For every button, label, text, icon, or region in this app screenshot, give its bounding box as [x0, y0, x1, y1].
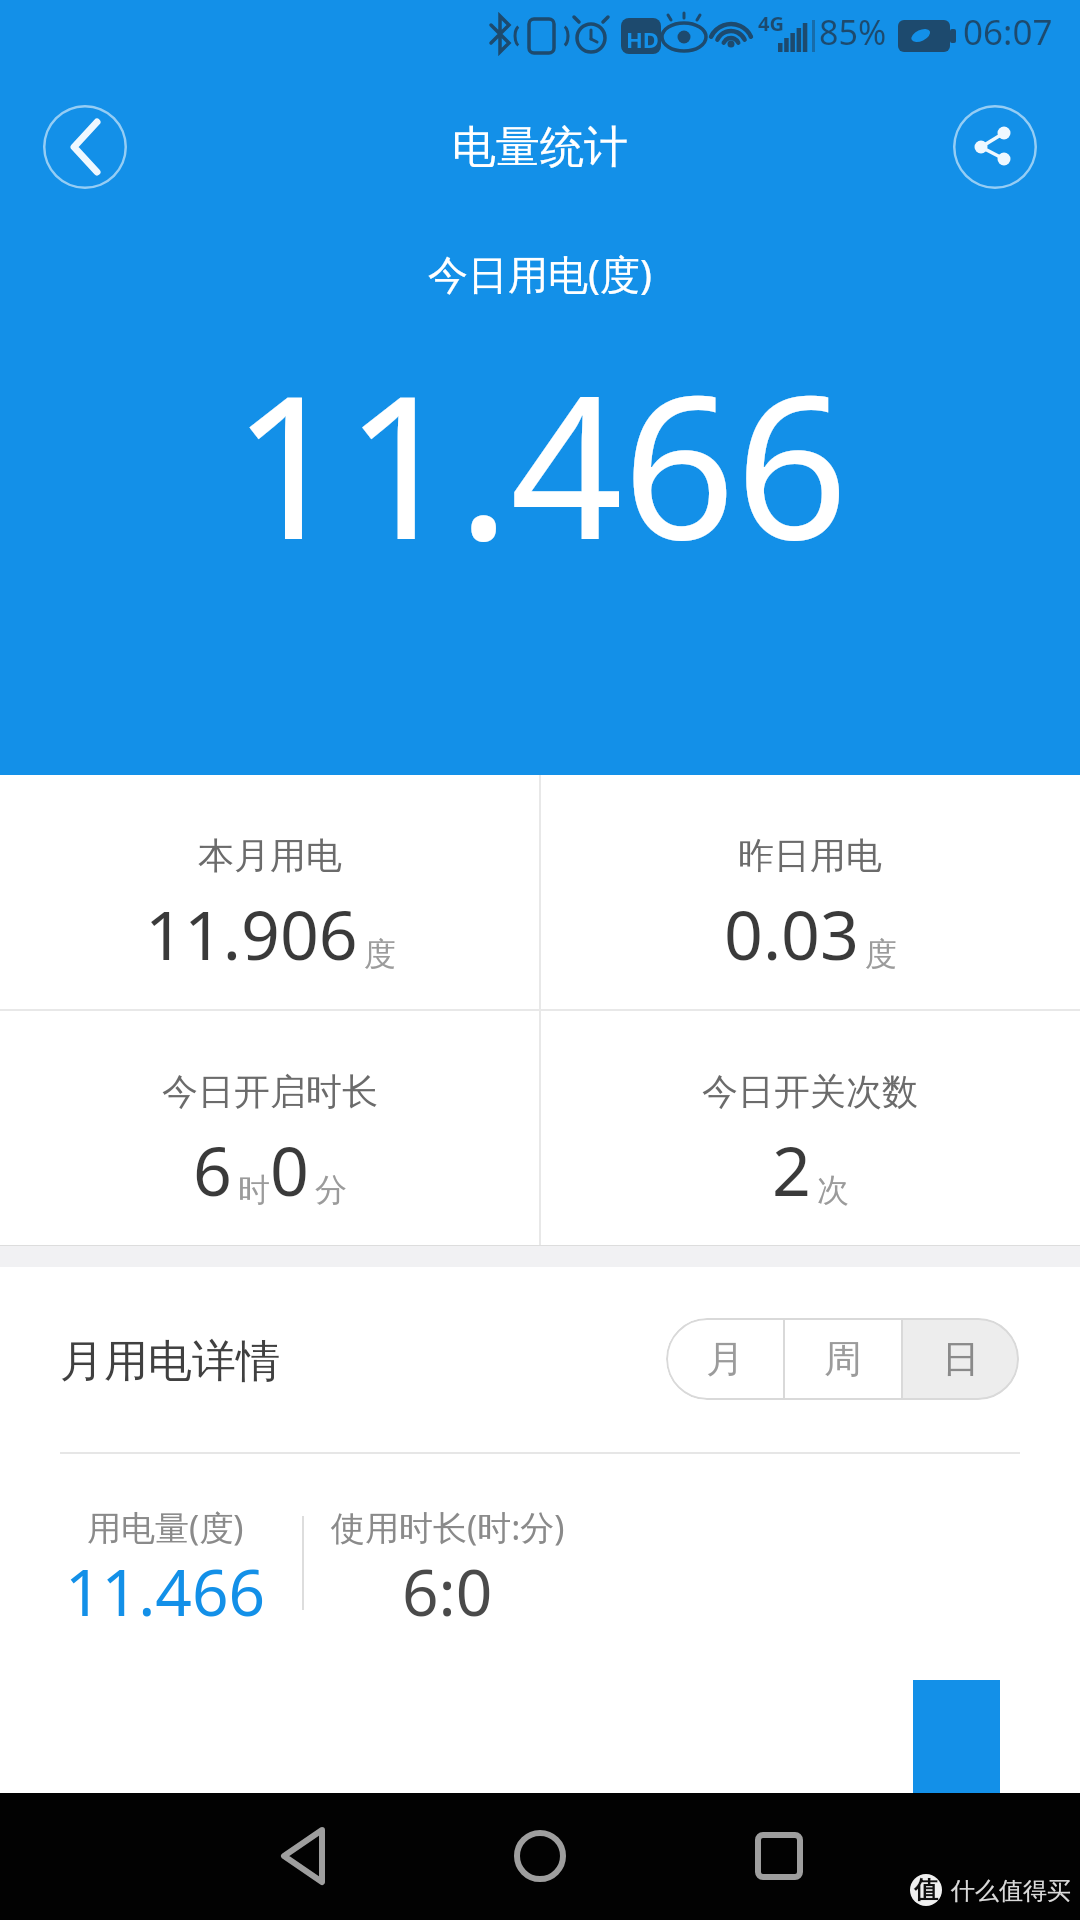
staticText: HD: [626, 24, 659, 54]
staticText: 度: [865, 934, 897, 974]
staticText: 用电量(度): [87, 1504, 244, 1550]
button[interactable]: 今日开关次数: [540, 1011, 1080, 1246]
button[interactable]: 月: [666, 1318, 783, 1400]
staticText: 时: [238, 1170, 270, 1210]
staticText: 06:07: [963, 8, 1053, 56]
staticText: 次: [817, 1170, 849, 1210]
staticText: 今日开关次数: [702, 1069, 918, 1114]
button[interactable]: 日: [903, 1318, 1019, 1400]
button[interactable]: [953, 105, 1037, 189]
staticText: 分: [315, 1170, 347, 1210]
staticText: 0.03: [724, 887, 859, 980]
staticText: 电量统计: [452, 120, 628, 175]
button[interactable]: 昨日用电: [540, 775, 1080, 1010]
staticText: 11.466: [232, 328, 849, 596]
staticText: 85%: [819, 9, 887, 55]
staticText: 0: [270, 1123, 309, 1216]
button[interactable]: [43, 105, 127, 189]
staticText: 周: [824, 1335, 862, 1383]
staticText: 月用电详情: [60, 1334, 280, 1389]
staticText: 今日用电(度): [428, 246, 652, 301]
staticText: 值: [914, 1875, 938, 1905]
staticText: 6: [193, 1123, 232, 1216]
button[interactable]: 周: [785, 1318, 901, 1400]
button[interactable]: [248, 1803, 358, 1910]
staticText: 本月用电: [198, 833, 342, 878]
staticText: 2: [772, 1123, 811, 1216]
button[interactable]: [485, 1803, 595, 1910]
staticText: 6:0: [402, 1548, 493, 1632]
staticText: 11.466: [65, 1548, 266, 1632]
staticText: 什么值得买: [951, 1876, 1071, 1906]
staticText: 昨日用电: [738, 833, 882, 878]
button[interactable]: [724, 1803, 834, 1910]
staticText: 使用时长(时:分): [331, 1504, 565, 1550]
button[interactable]: 今日开启时长: [0, 1011, 540, 1246]
staticText: 度: [364, 934, 396, 974]
staticText: 11.906: [145, 887, 358, 980]
staticText: 今日开启时长: [162, 1069, 378, 1114]
button[interactable]: 本月用电: [0, 775, 540, 1010]
button[interactable]: 11.466: [60, 1548, 270, 1632]
staticText: 日: [942, 1335, 980, 1383]
staticText: 月: [706, 1335, 744, 1383]
staticText: 4G: [758, 10, 784, 37]
